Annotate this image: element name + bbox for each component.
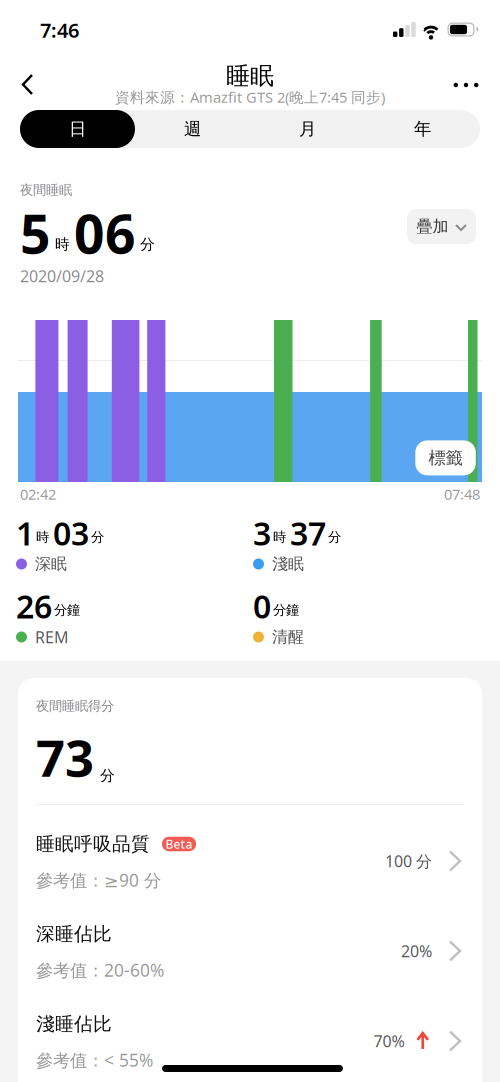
staticText: 3 [253, 512, 271, 554]
button[interactable]: 日 [20, 110, 135, 148]
staticText: 月 [299, 118, 316, 140]
staticText: 時 [55, 235, 70, 253]
staticText: 睡眠呼吸品質 [36, 832, 150, 855]
staticText: 資料來源：Amazfit GTS 2(晚上7:45 同步) [115, 87, 385, 107]
staticText: 淺眠 [272, 554, 304, 574]
staticText: 時 [273, 529, 286, 545]
staticText: 週 [184, 118, 201, 140]
button[interactable]: 睡眠呼吸品質 [18, 805, 482, 895]
button[interactable]: 標籤 [415, 440, 476, 475]
button[interactable]: 週 [135, 110, 250, 148]
staticText: 參考值：≥90 分 [36, 868, 161, 891]
button[interactable]: 淺睡佔比 [18, 985, 482, 1075]
staticText: 03 [53, 512, 89, 554]
staticText: 時 [36, 529, 49, 545]
staticText: 7:46 [40, 17, 79, 43]
staticText: Beta [165, 836, 192, 852]
staticText: 07:48 [444, 484, 480, 504]
button[interactable]: 年 [365, 110, 480, 148]
staticText: 73 [36, 723, 94, 791]
staticText: 100 分 [385, 850, 432, 872]
staticText: 1 [16, 512, 34, 554]
staticText: 深睡佔比 [36, 922, 112, 945]
staticText: 0 [253, 585, 271, 627]
staticText: 分鐘 [54, 602, 80, 618]
button[interactable]: 月 [250, 110, 365, 148]
staticText: 夜間睡眠 [20, 182, 72, 198]
staticText: 清醒 [272, 627, 304, 647]
staticText: 淺睡佔比 [36, 1012, 112, 1035]
staticText: 分 [100, 767, 115, 785]
staticText: 疊加 [416, 217, 448, 236]
staticText: 深眠 [35, 554, 67, 574]
staticText: 分鐘 [273, 602, 299, 618]
staticText: 日 [69, 118, 86, 140]
staticText: 70% [373, 1030, 404, 1052]
staticText: 參考值：20-60% [36, 958, 164, 981]
staticText: 分 [140, 235, 155, 253]
staticText: 2020/09/28 [20, 265, 104, 287]
staticText: 分 [91, 529, 104, 545]
staticText: 26 [16, 585, 52, 627]
button[interactable]: More [444, 70, 488, 100]
button[interactable]: 疊加 [407, 209, 476, 244]
staticText: 分 [328, 529, 341, 545]
staticText: 夜間睡眠得分 [36, 698, 114, 714]
staticText: 參考值：< 55% [36, 1048, 153, 1071]
staticText: 02:42 [20, 484, 56, 504]
button[interactable]: 深睡佔比 [18, 895, 482, 985]
button[interactable]: Back [8, 72, 52, 97]
staticText: 年 [414, 118, 431, 140]
staticText: REM [35, 626, 69, 648]
staticText: 06 [74, 198, 136, 268]
staticText: 標籤 [429, 447, 463, 469]
staticText: 5 [20, 198, 51, 268]
staticText: 睡眠 [226, 61, 274, 91]
staticText: 20% [401, 940, 432, 962]
staticText: 37 [290, 512, 326, 554]
